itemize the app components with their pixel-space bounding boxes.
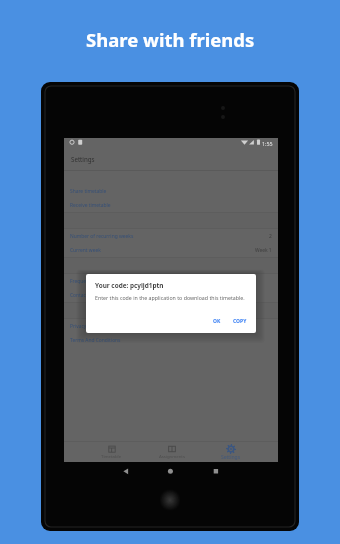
button[interactable]: COPY	[229, 317, 251, 326]
staticText: Share with friends	[86, 27, 255, 52]
staticText: Timetable	[101, 453, 122, 459]
button[interactable]: Frequently asked questions	[64, 274, 278, 288]
button[interactable]: Settings	[206, 442, 256, 462]
staticText: Assignments	[159, 453, 185, 459]
staticText: Share timetable	[70, 188, 107, 195]
staticText: Week 1	[255, 247, 272, 254]
staticText: Settings	[71, 155, 95, 163]
staticText: Current week	[70, 247, 101, 254]
staticText: Contact us	[70, 292, 95, 299]
staticText: Enter this code in the application to do…	[95, 294, 245, 301]
staticText: Your code: pcyijd1ptn	[95, 281, 164, 290]
button[interactable]: Terms And Conditions	[64, 333, 278, 347]
staticText: Frequently asked questions	[70, 278, 134, 285]
staticText: Number of recurring weeks	[70, 233, 134, 240]
button[interactable]: Contact us	[64, 288, 278, 302]
staticText: 1:55	[262, 140, 273, 147]
button[interactable]: Number of recurring weeks	[64, 229, 278, 243]
button[interactable]: Timetable	[86, 442, 136, 462]
staticText: Terms And Conditions	[70, 337, 121, 344]
staticText: COPY	[233, 318, 247, 325]
button[interactable]: Privacy policy	[64, 319, 278, 333]
button[interactable]: OK	[209, 317, 225, 326]
staticText: OK	[213, 318, 221, 325]
button[interactable]: Receive timetable	[64, 198, 278, 212]
button[interactable]: Current week	[64, 243, 278, 257]
staticText: Receive timetable	[70, 202, 111, 209]
staticText: Settings	[221, 454, 241, 461]
button[interactable]: Share timetable	[64, 184, 278, 198]
staticText: 2	[269, 233, 272, 240]
staticText: Privacy policy	[70, 323, 101, 330]
button[interactable]: Assignments	[147, 442, 197, 462]
